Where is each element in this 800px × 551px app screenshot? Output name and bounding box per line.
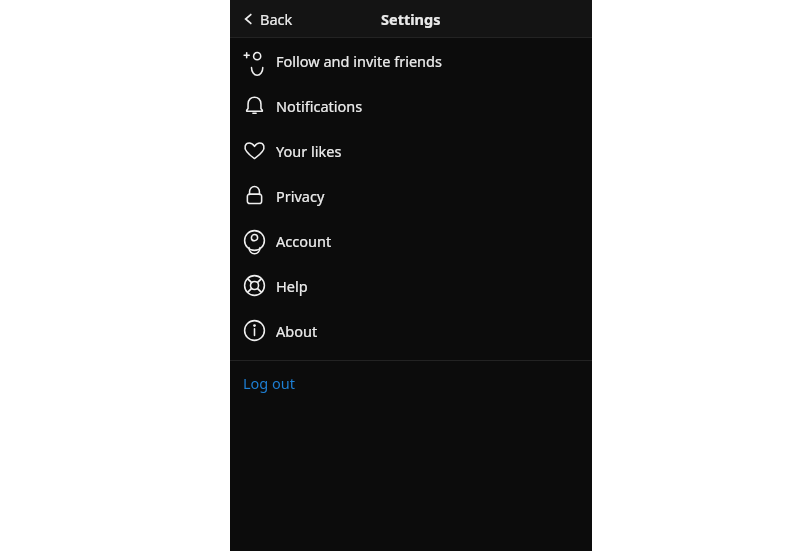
staticText: About	[276, 321, 318, 341]
button[interactable]: Help	[230, 263, 592, 308]
button[interactable]: About	[230, 308, 592, 353]
staticText: Log out	[243, 373, 296, 393]
button[interactable]: Log out	[230, 361, 592, 405]
button[interactable]: Back	[237, 4, 297, 34]
staticText: Back	[260, 9, 293, 29]
staticText: Privacy	[276, 186, 325, 206]
button[interactable]: Notifications	[230, 83, 592, 128]
button[interactable]: Your likes	[230, 128, 592, 173]
staticText: Notifications	[276, 96, 363, 116]
staticText: Your likes	[276, 141, 342, 161]
button[interactable]: Account	[230, 218, 592, 263]
button[interactable]: Follow and invite friends	[230, 38, 592, 83]
other: Back	[241, 12, 255, 26]
staticText: Follow and invite friends	[276, 51, 442, 71]
staticText: Help	[276, 276, 308, 296]
staticText: Settings	[381, 9, 441, 29]
button[interactable]: Privacy	[230, 173, 592, 218]
staticText: Account	[276, 231, 332, 251]
